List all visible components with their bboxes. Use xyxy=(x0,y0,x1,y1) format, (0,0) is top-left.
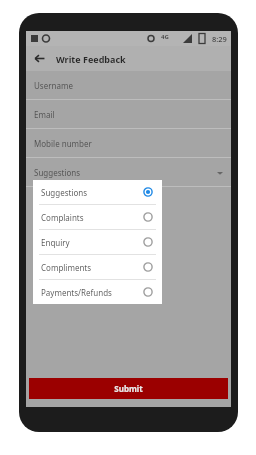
button[interactable]: Email xyxy=(26,100,231,129)
button[interactable]: Mobile number xyxy=(26,129,231,158)
button[interactable]: Username xyxy=(26,71,231,100)
staticText: 8:29 xyxy=(212,34,227,44)
button[interactable]: Payments/Refunds xyxy=(33,280,162,304)
button[interactable]: Complaints xyxy=(33,205,162,229)
staticText: Submit xyxy=(114,383,143,394)
staticText: Payments/Refunds xyxy=(41,287,112,298)
button[interactable]: Suggestions xyxy=(33,180,162,204)
staticText: Complaints xyxy=(41,212,84,223)
staticText: Enquiry xyxy=(41,237,70,248)
button[interactable]: Enquiry xyxy=(33,230,162,254)
button[interactable]: Compliments xyxy=(33,255,162,279)
staticText: Compliments xyxy=(41,262,92,273)
staticText: 4G xyxy=(161,33,169,41)
button[interactable]: Submit xyxy=(29,378,228,399)
staticText: Suggestions xyxy=(34,167,81,178)
staticText: Email xyxy=(34,109,55,120)
staticText: Username xyxy=(34,80,73,91)
staticText: Mobile number xyxy=(34,138,92,149)
button[interactable]: Suggestions xyxy=(26,158,231,187)
staticText: Suggestions xyxy=(41,187,88,198)
button[interactable]: Back xyxy=(30,49,49,68)
staticText: Write Feedback xyxy=(56,53,126,65)
